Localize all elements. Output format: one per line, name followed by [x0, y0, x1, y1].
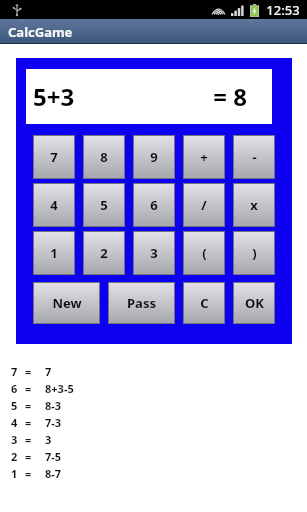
staticText: 8-7 [45, 466, 62, 481]
staticText: ) [252, 244, 257, 262]
button[interactable]: Pass [108, 282, 175, 324]
button[interactable]: OK [233, 282, 275, 324]
button[interactable]: 5 [83, 183, 125, 227]
button[interactable]: C [183, 282, 225, 324]
button[interactable]: ) [233, 231, 275, 275]
staticText: 2 [100, 244, 108, 262]
staticText: 5+3 [33, 80, 75, 113]
staticText: 8-3 [45, 398, 62, 413]
staticText: 5 [11, 398, 18, 413]
staticText: 5 [100, 196, 108, 214]
staticText: x [250, 196, 258, 214]
staticText: 7 [11, 364, 18, 379]
staticText: 7 [50, 148, 58, 166]
button[interactable]: 7 [0, 363, 307, 380]
staticText: 4 [50, 196, 58, 214]
button[interactable]: 2 [83, 231, 125, 275]
staticText: 7-3 [45, 415, 62, 430]
staticText: = [25, 449, 32, 464]
staticText: 1 [50, 244, 58, 262]
staticText: 7 [45, 364, 52, 379]
staticText: C [200, 294, 209, 312]
staticText: 3 [11, 432, 18, 447]
staticText: = [25, 466, 32, 481]
staticText: 1 [11, 466, 18, 481]
button[interactable]: ( [183, 231, 225, 275]
button[interactable]: 6 [0, 380, 307, 397]
staticText: 2 [11, 449, 18, 464]
staticText: 3 [150, 244, 158, 262]
button[interactable]: + [183, 135, 225, 179]
staticText: = 8 [213, 80, 247, 113]
button[interactable]: 2 [0, 448, 307, 465]
button[interactable]: / [183, 183, 225, 227]
staticText: 9 [150, 148, 158, 166]
staticText: + [200, 148, 208, 166]
staticText: / [201, 196, 207, 214]
staticText: New [52, 294, 82, 312]
button[interactable]: 4 [33, 183, 75, 227]
staticText: Pass [127, 294, 156, 312]
staticText: = [25, 432, 32, 447]
staticText: 6 [11, 381, 18, 396]
button[interactable]: 6 [133, 183, 175, 227]
staticText: CalcGame [8, 23, 73, 41]
staticText: = [25, 364, 32, 379]
button[interactable]: 5 [0, 397, 307, 414]
staticText: OK [245, 294, 264, 312]
staticText: 6 [150, 196, 158, 214]
staticText: 4 [11, 415, 18, 430]
staticText: 12:53 [266, 1, 300, 19]
staticText: = [25, 381, 32, 396]
staticText: 3 [45, 432, 52, 447]
button[interactable]: 7 [33, 135, 75, 179]
staticText: - [252, 148, 257, 166]
button[interactable]: 1 [33, 231, 75, 275]
staticText: = [25, 415, 32, 430]
staticText: ( [202, 244, 207, 262]
button[interactable]: 3 [0, 431, 307, 448]
button[interactable]: - [233, 135, 275, 179]
button[interactable]: New [33, 282, 100, 324]
button[interactable]: 8 [83, 135, 125, 179]
staticText: 7-5 [45, 449, 62, 464]
button[interactable]: 1 [0, 465, 307, 482]
staticText: = [25, 398, 32, 413]
staticText: 8 [100, 148, 108, 166]
button[interactable]: 4 [0, 414, 307, 431]
other: USB connected [12, 4, 22, 16]
staticText: 8+3-5 [45, 381, 74, 396]
button[interactable]: x [233, 183, 275, 227]
button[interactable]: 9 [133, 135, 175, 179]
button[interactable]: 3 [133, 231, 175, 275]
